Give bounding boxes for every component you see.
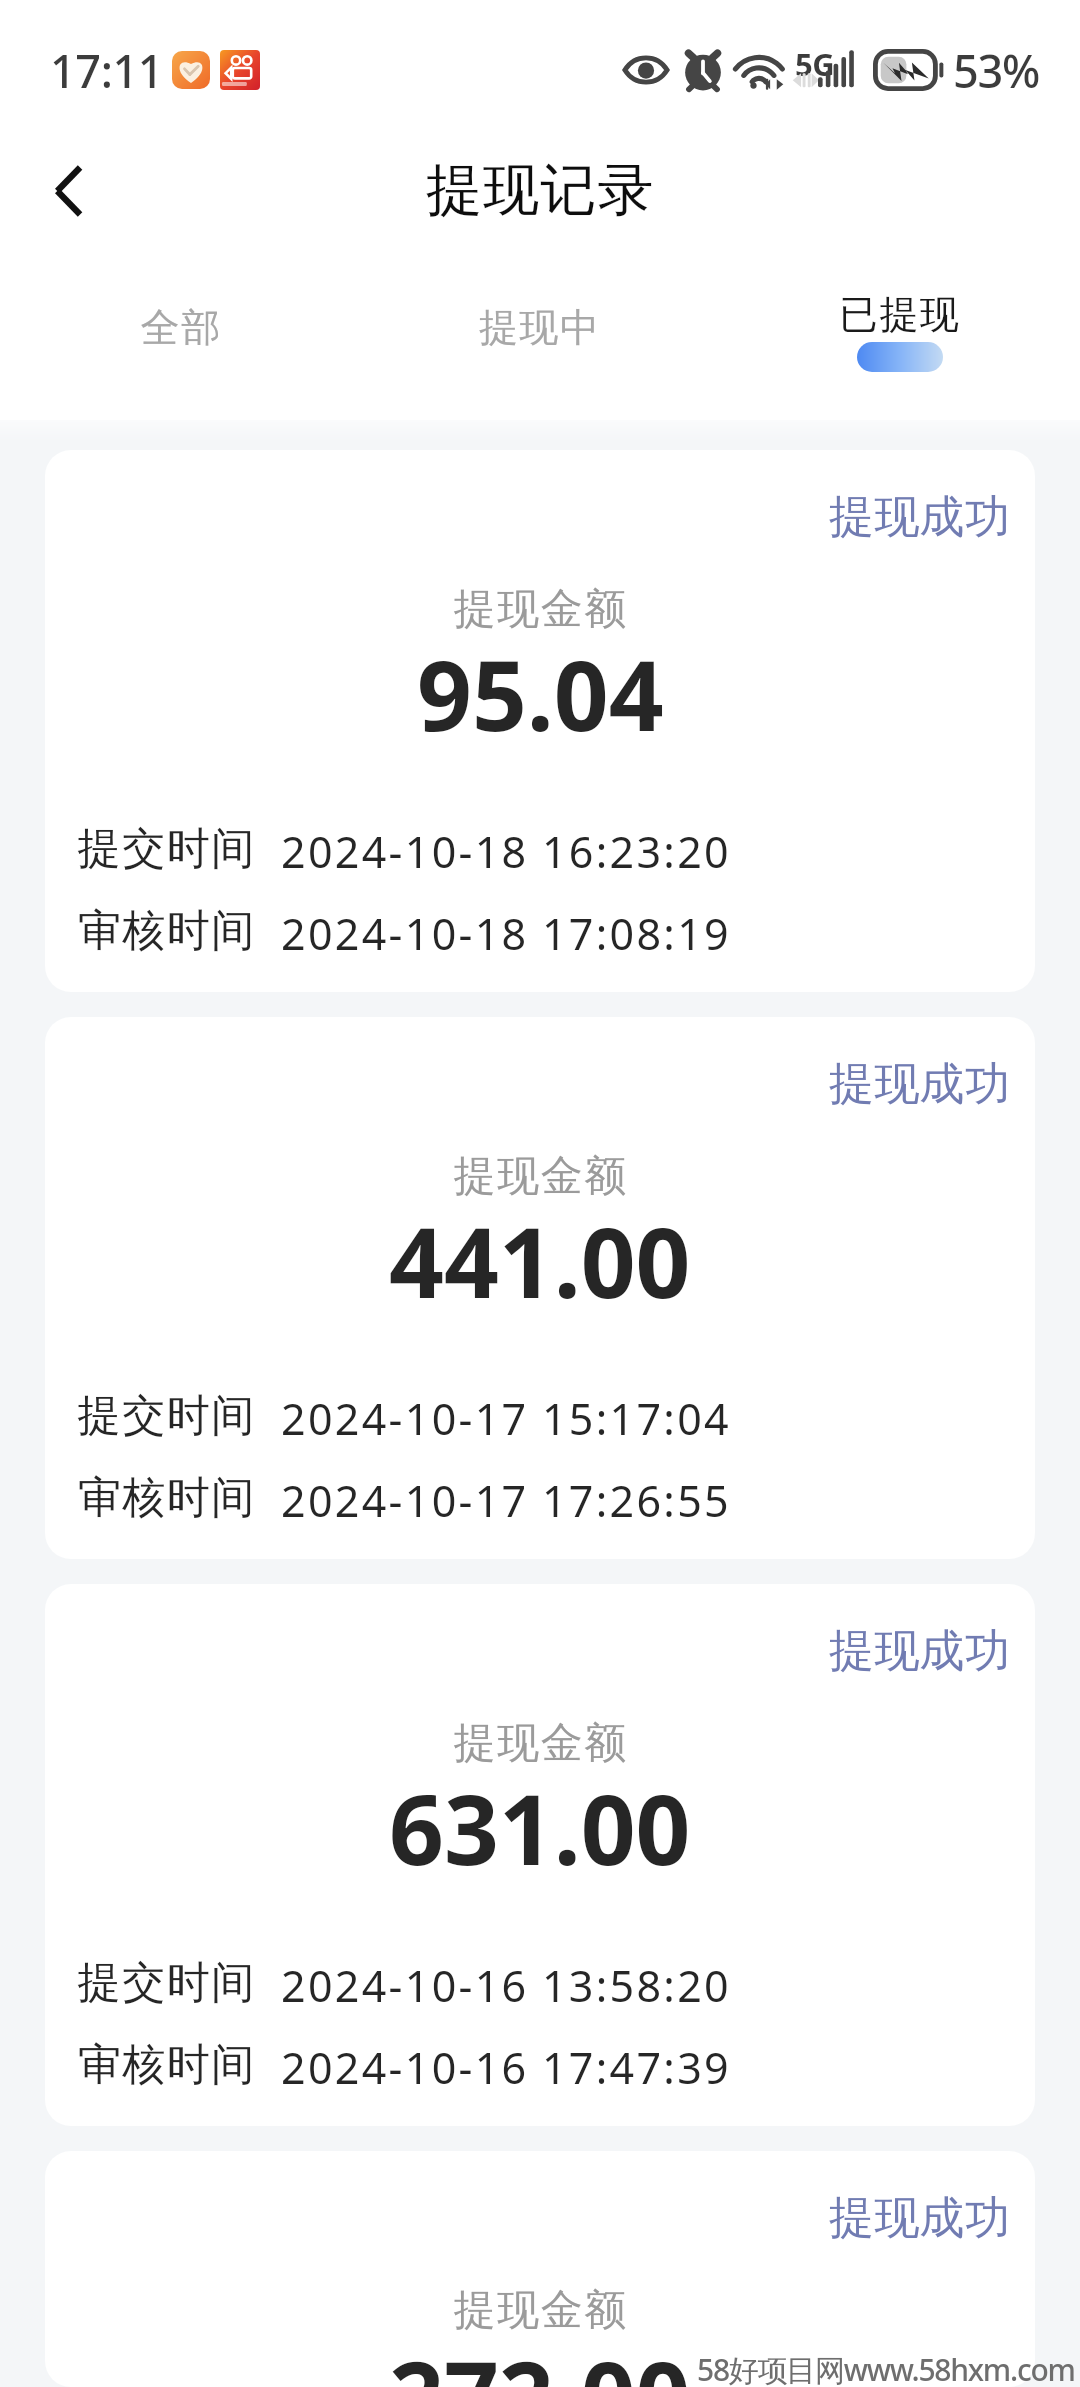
button[interactable]: 提现成功: [45, 1584, 1035, 2126]
button[interactable]: Back: [21, 144, 115, 238]
staticText: 提现中: [479, 303, 601, 352]
staticText: 58好项目网www.58hxm.com: [697, 2349, 1075, 2387]
staticText: 2024-10-16 13:58:20: [281, 1956, 731, 2015]
staticText: 提现金额: [453, 1150, 627, 1203]
other: Alarm: [684, 49, 722, 91]
button[interactable]: 提现成功: [45, 2151, 1035, 2387]
staticText: 2024-10-18 16:23:20: [281, 822, 731, 881]
button[interactable]: 提现成功: [45, 450, 1035, 992]
other: Eye protection: [623, 55, 669, 85]
staticText: 提现成功: [829, 489, 1011, 546]
staticText: 2024-10-18 17:08:19: [281, 904, 731, 963]
staticText: 已提现: [839, 290, 961, 339]
staticText: 95.04: [417, 628, 664, 759]
staticText: 提现金额: [453, 2284, 627, 2337]
button[interactable]: 提现成功: [45, 1017, 1035, 1559]
staticText: 5G: [795, 43, 835, 85]
staticText: 441.00: [389, 1195, 691, 1326]
staticText: 提现金额: [453, 583, 627, 636]
staticText: 提现金额: [453, 1717, 627, 1770]
other: 5G signal: [794, 43, 858, 97]
other: Battery: [873, 49, 945, 91]
staticText: 提现成功: [829, 1056, 1011, 1113]
staticText: 提交时间: [77, 822, 255, 876]
staticText: 审核时间: [77, 2038, 255, 2092]
staticText: 审核时间: [77, 904, 255, 958]
staticText: 提现成功: [829, 2190, 1011, 2247]
staticText: 提交时间: [77, 1956, 255, 2010]
staticText: 审核时间: [77, 1471, 255, 1525]
staticText: 全部: [140, 303, 221, 352]
staticText: 2024-10-17 17:26:55: [281, 1471, 731, 1530]
staticText: 2024-10-17 15:17:04: [281, 1389, 731, 1448]
staticText: 631.00: [389, 1762, 691, 1893]
staticText: 2024-10-16 17:47:39: [281, 2038, 731, 2097]
staticText: 53%: [953, 40, 1040, 101]
staticText: 272.00: [389, 2329, 691, 2387]
staticText: 提现成功: [829, 1623, 1011, 1680]
staticText: 提现记录: [426, 155, 655, 226]
staticText: 提交时间: [77, 1389, 255, 1443]
other: Wi-Fi: [741, 49, 788, 91]
staticText: 17:11: [50, 40, 164, 101]
